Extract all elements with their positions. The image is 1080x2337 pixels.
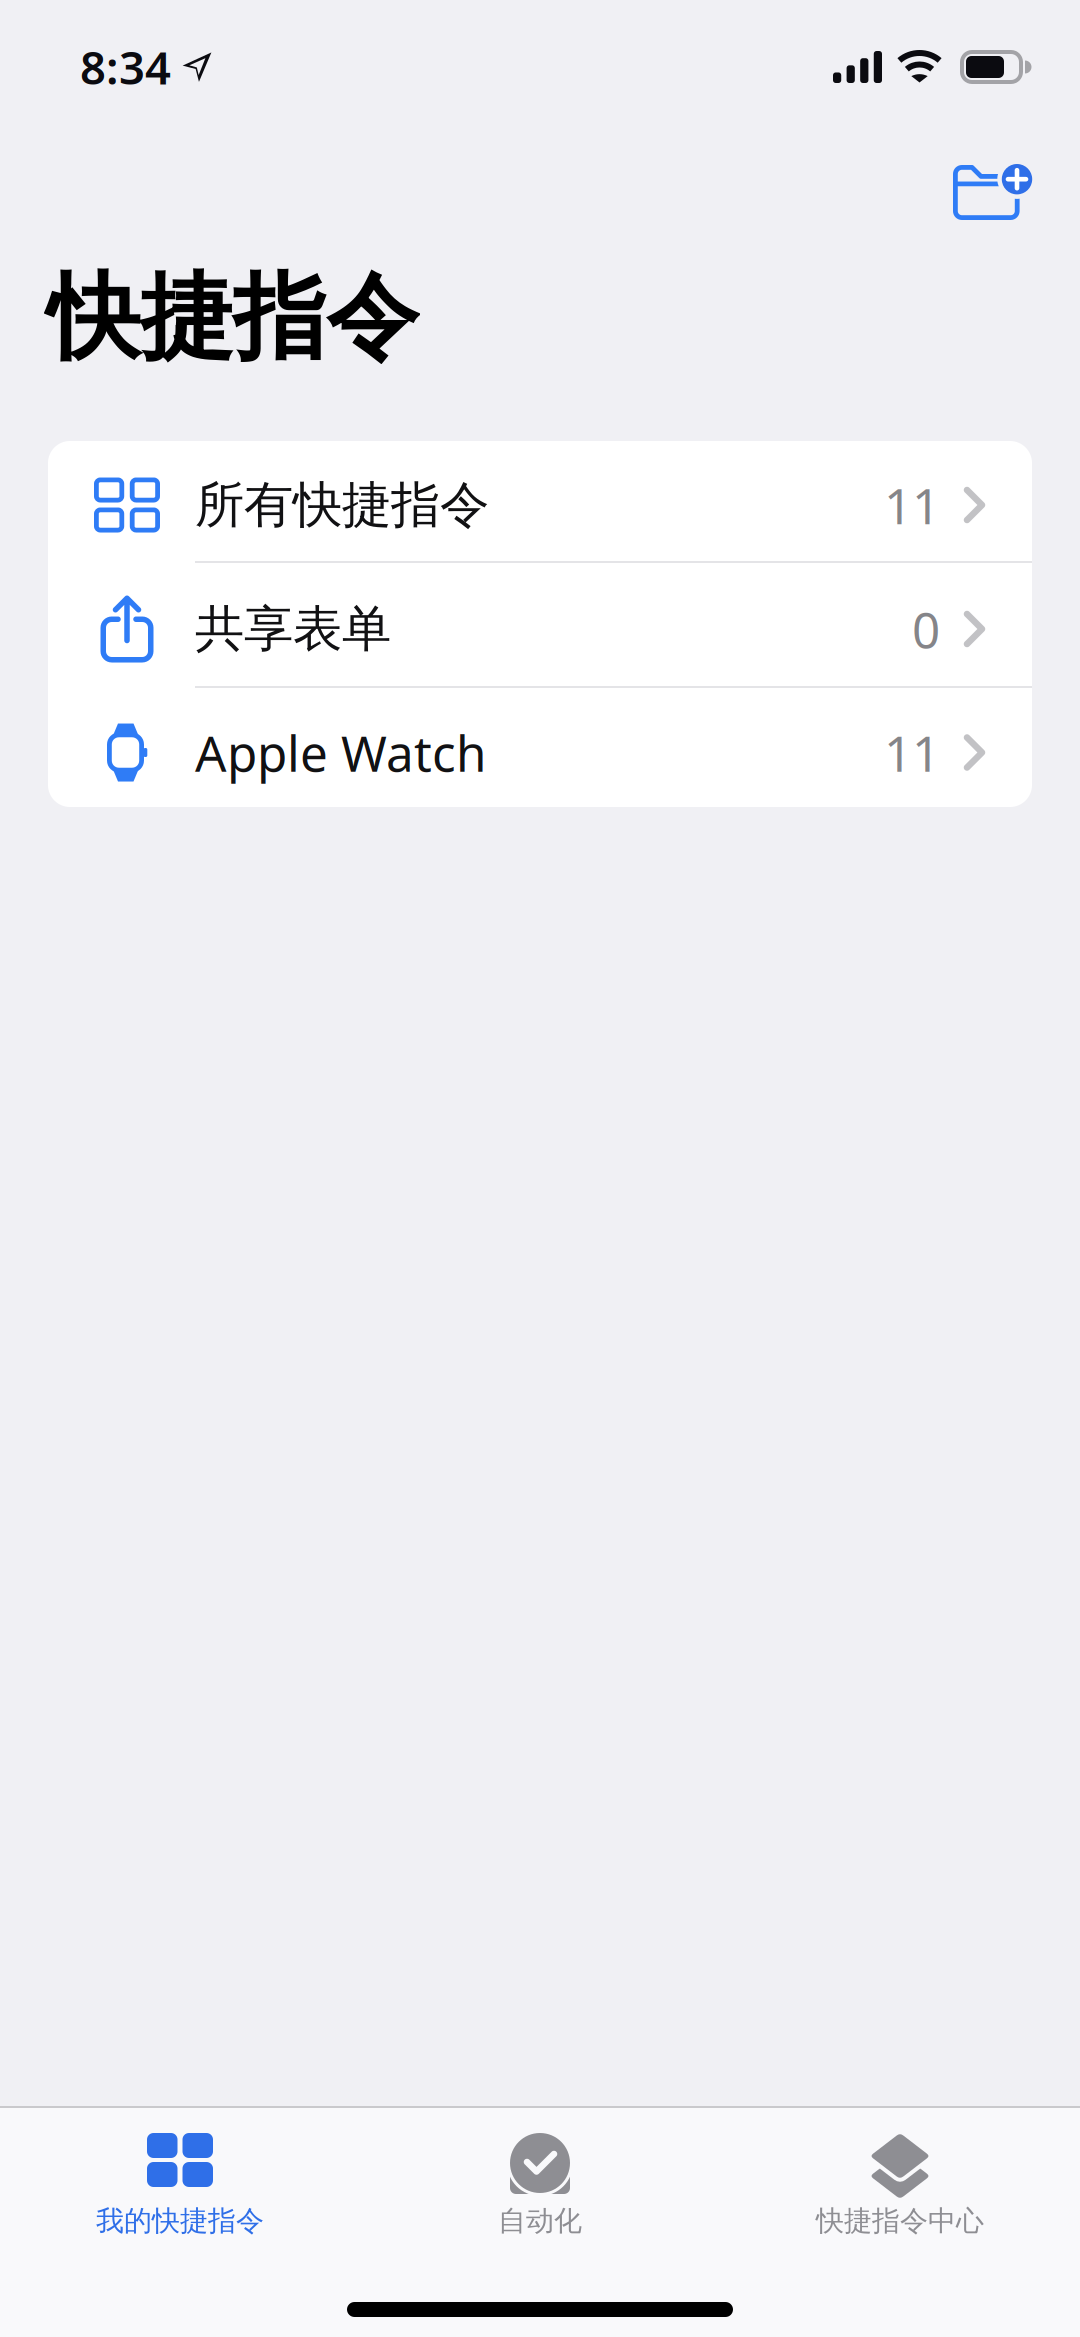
staticText: 共享表单 xyxy=(195,599,391,659)
button[interactable]: 共享表单 xyxy=(48,563,1032,686)
staticText: 11 xyxy=(884,720,940,785)
staticText: 自动化 xyxy=(498,2204,582,2238)
staticText: 0 xyxy=(912,596,940,662)
staticText: 8:34 xyxy=(80,37,171,97)
staticText: Apple Watch xyxy=(195,720,486,785)
button[interactable]: New Folder xyxy=(923,163,1063,221)
button[interactable]: Apple Watch xyxy=(48,688,1032,808)
staticText: 11 xyxy=(884,472,940,538)
staticText: 快捷指令中心 xyxy=(816,2204,984,2238)
button[interactable]: 我的快捷指令 xyxy=(0,2108,360,2248)
staticText: 我的快捷指令 xyxy=(96,2204,264,2238)
staticText: 快捷指令 xyxy=(47,261,419,375)
staticText: 所有快捷指令 xyxy=(195,475,489,535)
button[interactable]: 快捷指令中心 xyxy=(720,2108,1080,2248)
button[interactable]: 所有快捷指令 xyxy=(48,440,1032,561)
button[interactable]: 自动化 xyxy=(360,2108,720,2248)
